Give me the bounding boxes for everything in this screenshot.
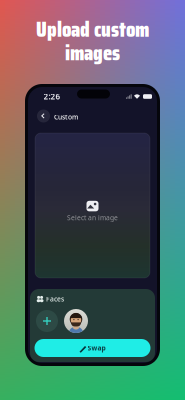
staticText: Custom [54,113,78,121]
staticText: Swap [87,344,105,352]
staticText: 2:26 [43,91,60,102]
button[interactable]: Select an image [35,133,150,278]
staticText: Faces [46,295,64,303]
button[interactable]: Swap [34,339,150,357]
staticText: images [65,36,120,70]
button[interactable]: Selected face [64,309,88,333]
button[interactable]: Back [35,107,52,124]
staticText: Upload custom [36,12,149,46]
button[interactable]: Add face [36,310,58,332]
staticText: Select an image [67,213,118,222]
